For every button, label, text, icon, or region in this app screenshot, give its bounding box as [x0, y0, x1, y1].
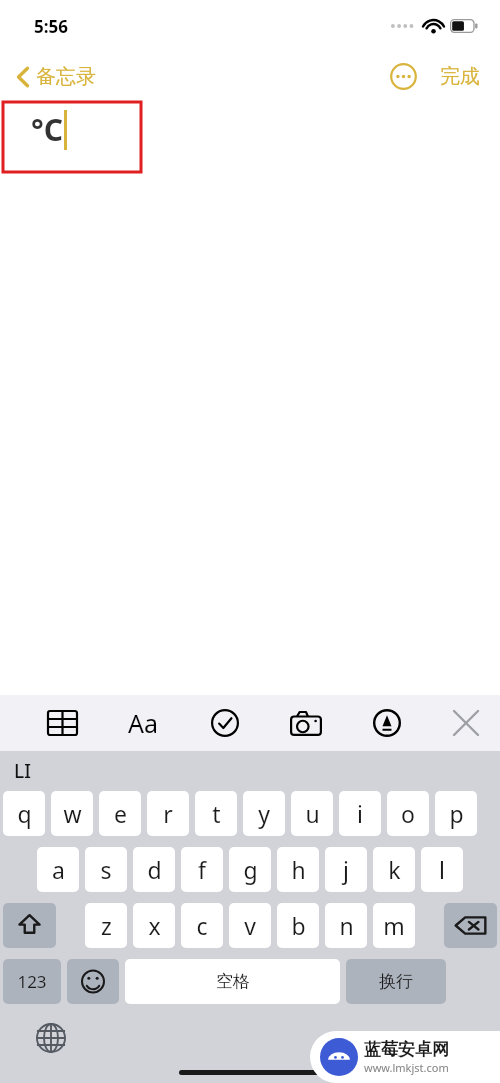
- staticText: d: [147, 854, 162, 885]
- button[interactable]: Checklist: [205, 703, 245, 743]
- staticText: Aa: [128, 706, 159, 740]
- button[interactable]: Camera: [284, 701, 328, 745]
- button[interactable]: h: [277, 847, 319, 892]
- button[interactable]: m: [373, 903, 415, 948]
- button[interactable]: b: [277, 903, 319, 948]
- staticText: p: [449, 798, 464, 829]
- staticText: 123: [17, 970, 47, 993]
- button[interactable]: t: [195, 791, 237, 836]
- button[interactable]: r: [147, 791, 189, 836]
- button[interactable]: y: [243, 791, 285, 836]
- staticText: v: [244, 910, 256, 941]
- staticText: www.lmkjst.com: [364, 1060, 449, 1075]
- button[interactable]: z: [85, 903, 127, 948]
- staticText: 备忘录: [36, 64, 96, 89]
- staticText: °C: [31, 109, 63, 150]
- staticText: s: [100, 854, 112, 885]
- button[interactable]: 123: [3, 959, 61, 1004]
- staticText: i: [357, 798, 363, 829]
- button[interactable]: Emoji: [67, 959, 119, 1004]
- button[interactable]: v: [229, 903, 271, 948]
- staticText: r: [163, 798, 173, 829]
- staticText: a: [52, 854, 65, 885]
- button[interactable]: k: [373, 847, 415, 892]
- staticText: j: [343, 854, 349, 885]
- button[interactable]: l: [421, 847, 463, 892]
- button[interactable]: Shift: [3, 903, 56, 948]
- button[interactable]: More options: [386, 59, 420, 93]
- staticText: h: [291, 854, 306, 885]
- button[interactable]: n: [325, 903, 367, 948]
- staticText: l: [439, 854, 445, 885]
- button[interactable]: Aa: [120, 700, 166, 746]
- button[interactable]: u: [291, 791, 333, 836]
- staticText: b: [291, 910, 306, 941]
- staticText: c: [196, 910, 208, 941]
- button[interactable]: i: [339, 791, 381, 836]
- staticText: 蓝莓安卓网: [364, 1039, 449, 1060]
- staticText: g: [243, 854, 258, 885]
- button[interactable]: 完成: [436, 60, 484, 93]
- button[interactable]: s: [85, 847, 127, 892]
- staticText: m: [383, 910, 405, 941]
- button[interactable]: c: [181, 903, 223, 948]
- staticText: t: [212, 798, 221, 829]
- staticText: y: [258, 798, 270, 829]
- button[interactable]: x: [133, 903, 175, 948]
- staticText: x: [148, 910, 161, 941]
- staticText: o: [401, 798, 415, 829]
- button[interactable]: 备忘录: [12, 60, 100, 93]
- staticText: 换行: [379, 971, 413, 992]
- button[interactable]: j: [325, 847, 367, 892]
- button[interactable]: q: [3, 791, 45, 836]
- button[interactable]: p: [435, 791, 477, 836]
- staticText: z: [101, 910, 112, 941]
- staticText: w: [63, 798, 82, 829]
- staticText: f: [198, 854, 206, 885]
- button[interactable]: 换行: [346, 959, 446, 1004]
- button[interactable]: f: [181, 847, 223, 892]
- staticText: 5:56: [34, 15, 68, 38]
- button[interactable]: Close keyboard: [446, 703, 486, 743]
- button[interactable]: g: [229, 847, 271, 892]
- button[interactable]: o: [387, 791, 429, 836]
- staticText: 完成: [440, 64, 480, 89]
- staticText: 空格: [216, 971, 250, 992]
- staticText: n: [339, 910, 354, 941]
- button[interactable]: a: [37, 847, 79, 892]
- staticText: u: [305, 798, 320, 829]
- button[interactable]: e: [99, 791, 141, 836]
- staticText: LI: [14, 758, 31, 784]
- button[interactable]: Markup: [367, 703, 407, 743]
- button[interactable]: w: [51, 791, 93, 836]
- staticText: k: [388, 854, 401, 885]
- button[interactable]: 空格: [125, 959, 340, 1004]
- staticText: e: [114, 798, 127, 829]
- staticText: q: [17, 798, 32, 829]
- button[interactable]: Backspace: [444, 903, 497, 948]
- button[interactable]: Change keyboard: [32, 1019, 70, 1057]
- button[interactable]: Table: [42, 703, 82, 743]
- button[interactable]: d: [133, 847, 175, 892]
